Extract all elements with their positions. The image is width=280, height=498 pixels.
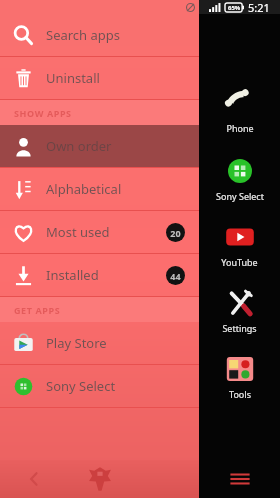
staticText: Sony Select [46,377,199,395]
staticText: Own order [46,137,199,155]
staticText: 44 [170,270,181,282]
button[interactable]: Phone [199,88,280,134]
staticText: 5:21 [248,0,270,14]
button[interactable]: Sony Select [0,365,199,407]
staticText: Uninstall [46,69,199,87]
button[interactable]: Own order [0,125,199,167]
staticText: Phone [226,122,254,134]
staticText: 20 [170,227,181,239]
staticText: YouTube [221,256,258,268]
button[interactable]: Sony Select [199,156,280,202]
button[interactable]: Recent apps [199,460,280,498]
button[interactable]: YouTube [199,222,280,268]
staticText: Tools [229,388,251,400]
button[interactable]: Search apps [0,14,199,56]
button[interactable]: Home [67,460,133,498]
button[interactable]: Alphabetical [0,168,199,210]
staticText: Installed [46,266,166,284]
staticText: Play Store [46,334,199,352]
staticText: Sony Select [216,190,264,202]
staticText: Settings [222,322,257,334]
staticText: Alphabetical [46,180,199,198]
staticText: GET APPS [14,304,61,316]
button[interactable]: Uninstall [0,57,199,99]
button[interactable]: Most used [0,211,199,253]
button[interactable]: Settings [199,288,280,334]
button[interactable]: Back [0,460,67,498]
staticText: SHOW APPS [14,107,72,119]
staticText: 65% [228,4,241,12]
button[interactable]: Play Store [0,322,199,364]
staticText: Search apps [46,26,199,44]
button[interactable]: Installed [0,254,199,296]
staticText: Most used [46,223,166,241]
button[interactable]: Tools [199,354,280,400]
